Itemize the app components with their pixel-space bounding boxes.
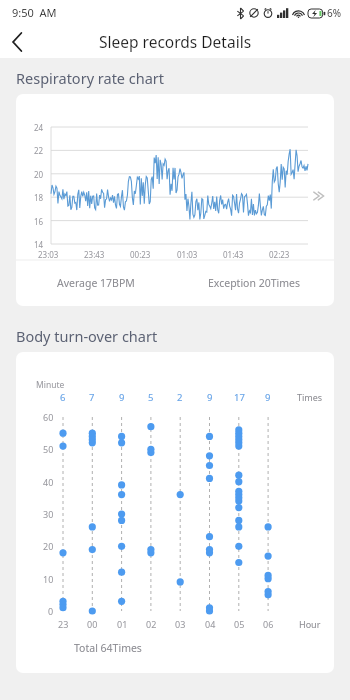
staticText: 01:03 <box>177 249 198 260</box>
staticText: 10 <box>43 573 54 585</box>
staticText: 06 <box>263 618 274 630</box>
staticText: 01:43 <box>223 249 244 260</box>
staticText: 24 <box>34 122 44 133</box>
staticText: Hour <box>299 618 321 630</box>
staticText: 22 <box>34 145 44 156</box>
staticText: 04 <box>205 618 216 630</box>
staticText: 7 <box>89 391 95 404</box>
staticText: 6% <box>327 6 342 20</box>
staticText: 00:23 <box>130 249 151 260</box>
button[interactable]: Next <box>306 184 330 208</box>
staticText: 02:23 <box>269 249 290 260</box>
staticText: 03 <box>175 618 186 630</box>
staticText: 20 <box>43 540 54 552</box>
staticText: 0 <box>48 605 54 617</box>
staticText: Total 64Times <box>74 641 142 655</box>
staticText: 40 <box>43 476 54 488</box>
staticText: 6 <box>60 391 66 404</box>
staticText: 23:43 <box>84 249 105 260</box>
staticText: Exception 20Times <box>208 276 301 290</box>
staticText: 17 <box>234 391 245 404</box>
staticText: 16 <box>34 216 44 227</box>
staticText: 02 <box>146 618 157 630</box>
staticText: 23:03 <box>38 249 59 260</box>
button[interactable]: 24 <box>16 94 334 306</box>
staticText: 9 <box>265 391 271 404</box>
staticText: 30 <box>43 508 54 520</box>
staticText: 9 <box>207 391 213 404</box>
staticText: Minute <box>36 379 65 391</box>
button[interactable]: Back <box>0 25 34 58</box>
staticText: 20 <box>34 169 44 180</box>
staticText: Sleep records Details <box>99 31 252 52</box>
staticText: 14 <box>34 239 44 250</box>
staticText: 2 <box>177 391 183 404</box>
staticText: 18 <box>34 192 44 203</box>
staticText: 9:50 AM <box>12 5 57 20</box>
staticText: 05 <box>234 618 245 630</box>
staticText: 23 <box>58 618 69 630</box>
staticText: 00 <box>87 618 98 630</box>
staticText: Average 17BPM <box>57 276 135 290</box>
staticText: 9 <box>119 391 125 404</box>
staticText: 50 <box>43 443 54 455</box>
staticText: Respiratory rate chart <box>16 68 165 88</box>
staticText: 01 <box>117 618 128 630</box>
button[interactable]: Minute <box>16 352 334 673</box>
staticText: Times <box>297 391 323 403</box>
staticText: 5 <box>148 391 154 404</box>
staticText: Body turn-over chart <box>16 326 158 346</box>
staticText: 60 <box>43 411 54 423</box>
